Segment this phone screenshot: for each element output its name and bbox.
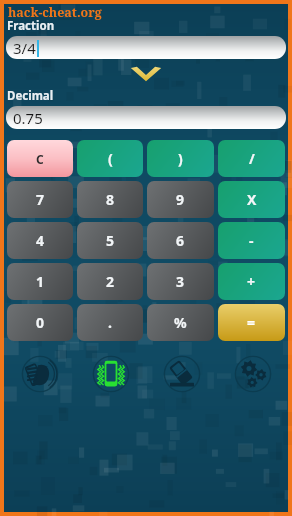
button[interactable]: ) [147, 140, 214, 177]
staticText: Decimal [7, 88, 54, 104]
staticText: % [174, 313, 187, 332]
staticText: ) [178, 149, 183, 168]
button[interactable]: . [77, 304, 143, 341]
staticText: C [36, 151, 44, 167]
button[interactable]: = [218, 304, 285, 341]
button[interactable]: 3/4 [6, 36, 286, 59]
staticText: hack-cheat.org [8, 4, 102, 21]
staticText: 2 [106, 272, 115, 291]
button[interactable]: ( [77, 140, 143, 177]
button[interactable]: 8 [77, 181, 143, 218]
staticText: 3 [176, 272, 185, 291]
button[interactable]: 6 [147, 222, 214, 259]
button[interactable]: 1 [7, 263, 73, 300]
staticText: 1 [36, 272, 45, 291]
staticText: / [249, 149, 255, 168]
button[interactable]: / [218, 140, 285, 177]
staticText: - [249, 231, 254, 250]
staticText: 3/4 [13, 38, 36, 58]
button[interactable]: % [147, 304, 214, 341]
button[interactable]: Settings [217, 348, 288, 400]
staticText: X [247, 190, 257, 209]
button[interactable]: Shake to calculate [4, 348, 75, 400]
button[interactable]: 3 [147, 263, 214, 300]
button[interactable]: 0.75 [6, 106, 286, 129]
staticText: + [247, 272, 256, 291]
staticText: Fraction [7, 18, 55, 34]
button[interactable]: 4 [7, 222, 73, 259]
button[interactable]: - [218, 222, 285, 259]
button[interactable]: 9 [147, 181, 214, 218]
staticText: = [247, 313, 256, 332]
button[interactable]: + [218, 263, 285, 300]
staticText: ( [108, 149, 113, 168]
staticText: 0 [36, 313, 45, 332]
staticText: 5 [106, 231, 115, 250]
staticText: 4 [36, 231, 45, 250]
button[interactable]: 5 [77, 222, 143, 259]
button[interactable]: Clear [146, 348, 217, 400]
button[interactable]: 7 [7, 181, 73, 218]
button[interactable]: X [218, 181, 285, 218]
button[interactable]: C [7, 140, 73, 177]
staticText: 0.75 [13, 108, 43, 128]
staticText: 9 [176, 190, 185, 209]
button[interactable]: 0 [7, 304, 73, 341]
staticText: 8 [106, 190, 115, 209]
button[interactable]: Vibrate [75, 348, 146, 400]
button[interactable]: 2 [77, 263, 143, 300]
staticText: 7 [36, 190, 45, 209]
staticText: . [108, 313, 112, 332]
staticText: 6 [176, 231, 185, 250]
